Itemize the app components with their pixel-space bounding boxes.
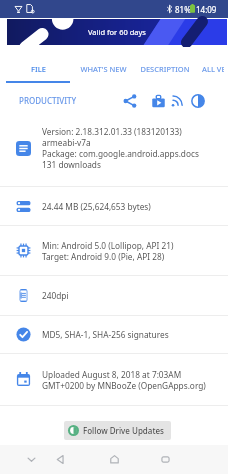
button[interactable]: Recents [151, 445, 179, 474]
staticText: Package: com.google.android.apps.docs [42, 148, 199, 159]
button[interactable]: Hide keyboard [17, 445, 45, 474]
button[interactable]: Google Play [149, 92, 167, 110]
staticText: Uploaded August 8, 2018 at 7:03AM [42, 369, 182, 380]
staticText: armeabi-v7a [42, 137, 91, 148]
button[interactable]: 240dpi [0, 276, 228, 315]
button[interactable]: Follow Drive Updates [64, 421, 171, 440]
button[interactable]: MD5, SHA-1, SHA-256 signatures [0, 316, 228, 353]
staticText: GMT+0200 by MNBooZe (OpenGApps.org) [42, 380, 206, 391]
button[interactable]: Toggle dark theme [189, 92, 207, 110]
button[interactable]: PRODUCTIVITY [19, 95, 77, 106]
button[interactable]: FILE [0, 47, 72, 83]
staticText: Target: Android 9.0 (Pie, API 28) [42, 251, 165, 262]
staticText: 81% [175, 4, 191, 15]
staticText: 14:09 [196, 4, 217, 15]
button[interactable]: Uploaded August 8, 2018 at 7:03AM [0, 354, 228, 405]
button[interactable]: Subscribe to feed [168, 92, 186, 110]
staticText: 131 downloads [42, 159, 101, 170]
button[interactable]: WHAT'S NEW [72, 47, 134, 83]
staticText: 240dpi [42, 290, 69, 301]
staticText: DESCRIPTION [140, 64, 190, 74]
button[interactable]: Back [46, 445, 74, 474]
staticText: 24.44 MB (25,624,653 bytes) [42, 201, 151, 212]
staticText: Min: Android 5.0 (Lollipop, API 21) [42, 240, 174, 251]
staticText: ALL VERSIONS [202, 64, 224, 74]
staticText: Valid for 60 days [88, 27, 146, 37]
staticText: FILE [31, 64, 46, 74]
button[interactable]: Advertisement [7, 19, 227, 45]
button[interactable]: 24.44 MB (25,624,653 bytes) [0, 187, 228, 225]
button[interactable]: Home [100, 445, 128, 474]
button[interactable]: Min: Android 5.0 (Lollipop, API 21) [0, 226, 228, 275]
staticText: Follow Drive Updates [83, 425, 164, 436]
button[interactable]: DESCRIPTION [134, 47, 196, 83]
staticText: WHAT'S NEW [80, 64, 127, 74]
button[interactable]: Share [121, 92, 139, 110]
button[interactable]: ALL VERSIONS [196, 47, 228, 83]
staticText: MD5, SHA-1, SHA-256 signatures [42, 329, 169, 340]
staticText: Version: 2.18.312.01.33 (183120133) [42, 126, 182, 137]
button[interactable]: Version: 2.18.312.01.33 (183120133) [0, 110, 228, 186]
